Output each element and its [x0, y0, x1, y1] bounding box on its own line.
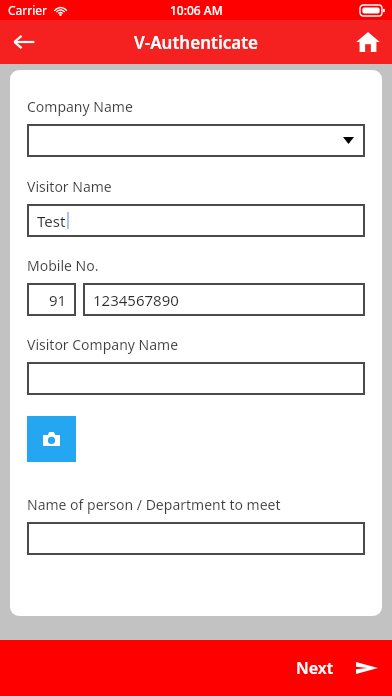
staticText: 1234567890: [93, 290, 179, 310]
staticText: V-Authenticate: [134, 31, 259, 54]
button[interactable]: [27, 124, 365, 157]
staticText: Test: [37, 211, 66, 231]
staticText: Name of person / Department to meet: [27, 495, 281, 514]
staticText: Carrier: [8, 2, 48, 18]
staticText: 10:06 AM: [170, 2, 223, 18]
staticText: Mobile No.: [27, 256, 99, 275]
staticText: Next: [296, 657, 334, 679]
button[interactable]: Next: [296, 657, 378, 679]
button[interactable]: 91: [27, 283, 76, 316]
staticText: 91: [49, 290, 67, 310]
button[interactable]: [27, 522, 365, 555]
button[interactable]: [27, 362, 365, 395]
staticText: Visitor Company Name: [27, 335, 179, 354]
staticText: Company Name: [27, 97, 133, 116]
button[interactable]: Back: [0, 20, 48, 64]
button[interactable]: Home: [344, 20, 392, 64]
staticText: Visitor Name: [27, 177, 112, 196]
button[interactable]: 1234567890: [83, 283, 365, 316]
button[interactable]: Test: [27, 204, 365, 237]
button[interactable]: Take photo: [27, 416, 76, 462]
